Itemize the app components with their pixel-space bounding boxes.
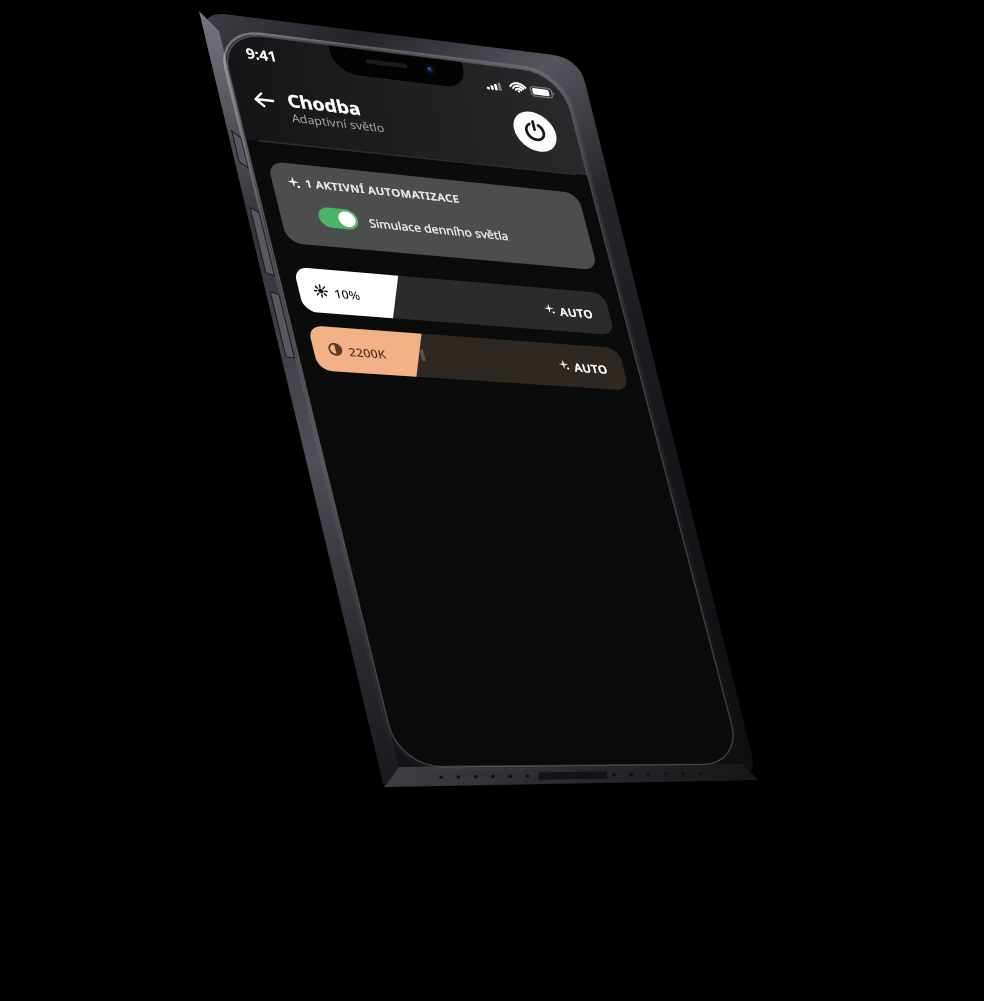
button[interactable]: Chodba adaptive light control — [0, 0, 984, 1001]
